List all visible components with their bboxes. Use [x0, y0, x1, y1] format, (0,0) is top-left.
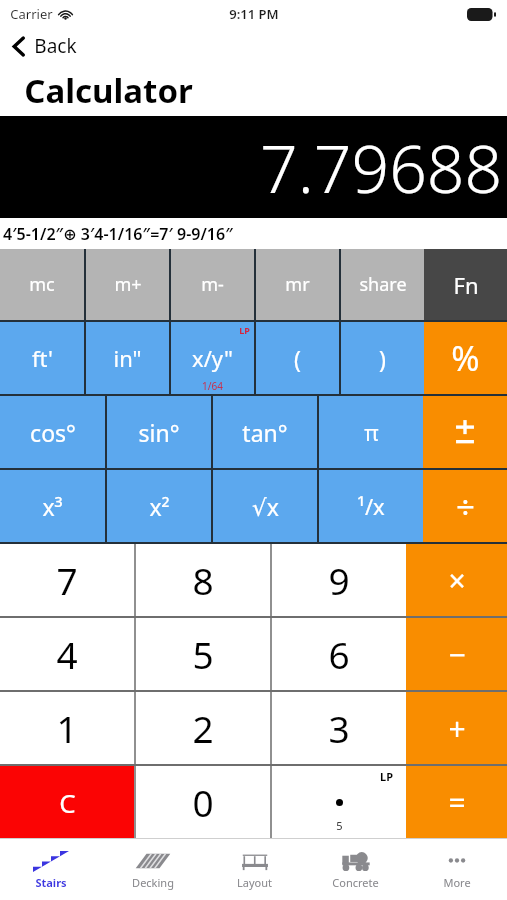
button[interactable]: 6	[272, 618, 406, 690]
button[interactable]: 2	[136, 692, 270, 764]
button[interactable]: ft'	[0, 322, 84, 394]
staticText: (	[294, 343, 301, 374]
staticText: x/y"	[192, 343, 233, 373]
staticText: LP	[380, 769, 393, 784]
staticText: sin°	[138, 417, 180, 448]
staticText: +	[448, 708, 466, 749]
staticText: Back	[34, 33, 77, 59]
button[interactable]: Plus or minus	[423, 396, 507, 468]
staticText: tan°	[242, 417, 288, 448]
button[interactable]: ÷	[423, 470, 507, 542]
staticText: C	[59, 785, 76, 820]
staticText: 1	[56, 703, 78, 753]
staticText: 4	[56, 629, 78, 679]
staticText: 2	[192, 703, 214, 753]
button[interactable]: 7	[0, 544, 134, 616]
staticText: m-	[201, 272, 224, 297]
other: Stairs	[33, 849, 69, 873]
staticText: 4′5-1/2″⊕ 3′4-1/16″=7′ 9-9/16″	[3, 223, 233, 245]
button[interactable]: share	[341, 249, 424, 320]
button[interactable]: 1	[0, 692, 134, 764]
other: Concrete	[338, 849, 374, 873]
staticText: 1/64	[202, 379, 223, 393]
staticText: 9	[328, 555, 350, 605]
button[interactable]: mr	[256, 249, 339, 320]
staticText: Decking	[132, 875, 174, 890]
other: Decking	[135, 849, 171, 873]
button[interactable]: More	[406, 839, 507, 900]
button[interactable]: 4	[0, 618, 134, 690]
staticText: 7.79688	[260, 122, 503, 212]
staticText: =	[448, 782, 466, 823]
staticText: 8	[192, 555, 214, 605]
staticText: 0	[192, 777, 214, 827]
button[interactable]: Decking	[102, 839, 204, 900]
staticText: Calculator	[24, 68, 193, 113]
staticText: 7	[56, 555, 78, 605]
staticText: Fn	[453, 270, 479, 300]
button[interactable]: m+	[86, 249, 169, 320]
button[interactable]: 8	[136, 544, 270, 616]
staticText: in"	[113, 343, 142, 373]
staticText: ft'	[32, 343, 53, 373]
staticText: 5	[192, 629, 214, 679]
staticText: LP	[239, 324, 250, 336]
staticText: Stairs	[35, 875, 67, 890]
other: Back	[13, 36, 25, 57]
staticText: cos°	[30, 417, 76, 448]
other: More	[439, 849, 475, 873]
button[interactable]: (	[256, 322, 339, 394]
button[interactable]: x²	[107, 470, 211, 542]
button[interactable]: tan°	[213, 396, 317, 468]
button[interactable]: Concrete	[305, 839, 406, 900]
button[interactable]: 5	[136, 618, 270, 690]
button[interactable]: 3	[272, 692, 406, 764]
staticText: share	[359, 272, 407, 297]
button[interactable]: +	[406, 692, 507, 764]
staticText: Concrete	[332, 875, 379, 890]
staticText: Layout	[237, 875, 272, 890]
button[interactable]: √x	[213, 470, 317, 542]
staticText: ¹/x	[357, 491, 385, 521]
button[interactable]: x³	[0, 470, 105, 542]
button[interactable]: −	[406, 618, 507, 690]
staticText: π	[364, 417, 379, 447]
staticText: mr	[285, 272, 310, 297]
button[interactable]: %	[424, 322, 507, 394]
button[interactable]: ×	[406, 544, 507, 616]
button[interactable]: π	[319, 396, 423, 468]
button[interactable]: )	[341, 322, 424, 394]
button[interactable]: x/y"	[171, 322, 254, 394]
button[interactable]: Stairs	[0, 839, 102, 900]
staticText: 5	[336, 818, 343, 833]
staticText: 3	[328, 703, 350, 753]
button[interactable]: in"	[86, 322, 169, 394]
staticText: √x	[252, 491, 279, 522]
button[interactable]: Back	[0, 28, 507, 64]
button[interactable]: Layout	[204, 839, 305, 900]
button[interactable]: LP	[272, 766, 406, 838]
button[interactable]: mc	[0, 249, 84, 320]
button[interactable]: cos°	[0, 396, 105, 468]
staticText: More	[443, 875, 471, 890]
button[interactable]: =	[406, 766, 507, 838]
staticText: Carrier	[10, 5, 53, 23]
staticText: ÷	[456, 484, 475, 529]
staticText: %	[451, 335, 480, 381]
other: Layout	[237, 849, 273, 873]
staticText: −	[448, 634, 466, 675]
button[interactable]: m-	[171, 249, 254, 320]
button[interactable]: ¹/x	[319, 470, 423, 542]
button[interactable]: Fn	[424, 249, 507, 320]
staticText: ×	[448, 560, 466, 601]
button[interactable]: 0	[136, 766, 270, 838]
staticText: 6	[328, 629, 350, 679]
staticText: x²	[149, 491, 170, 522]
staticText: 9:11 PM	[229, 5, 279, 23]
staticText: x³	[42, 491, 63, 522]
staticText: m+	[114, 272, 142, 297]
button[interactable]: C	[0, 766, 134, 838]
staticText: )	[379, 343, 386, 374]
button[interactable]: sin°	[107, 396, 211, 468]
button[interactable]: 9	[272, 544, 406, 616]
